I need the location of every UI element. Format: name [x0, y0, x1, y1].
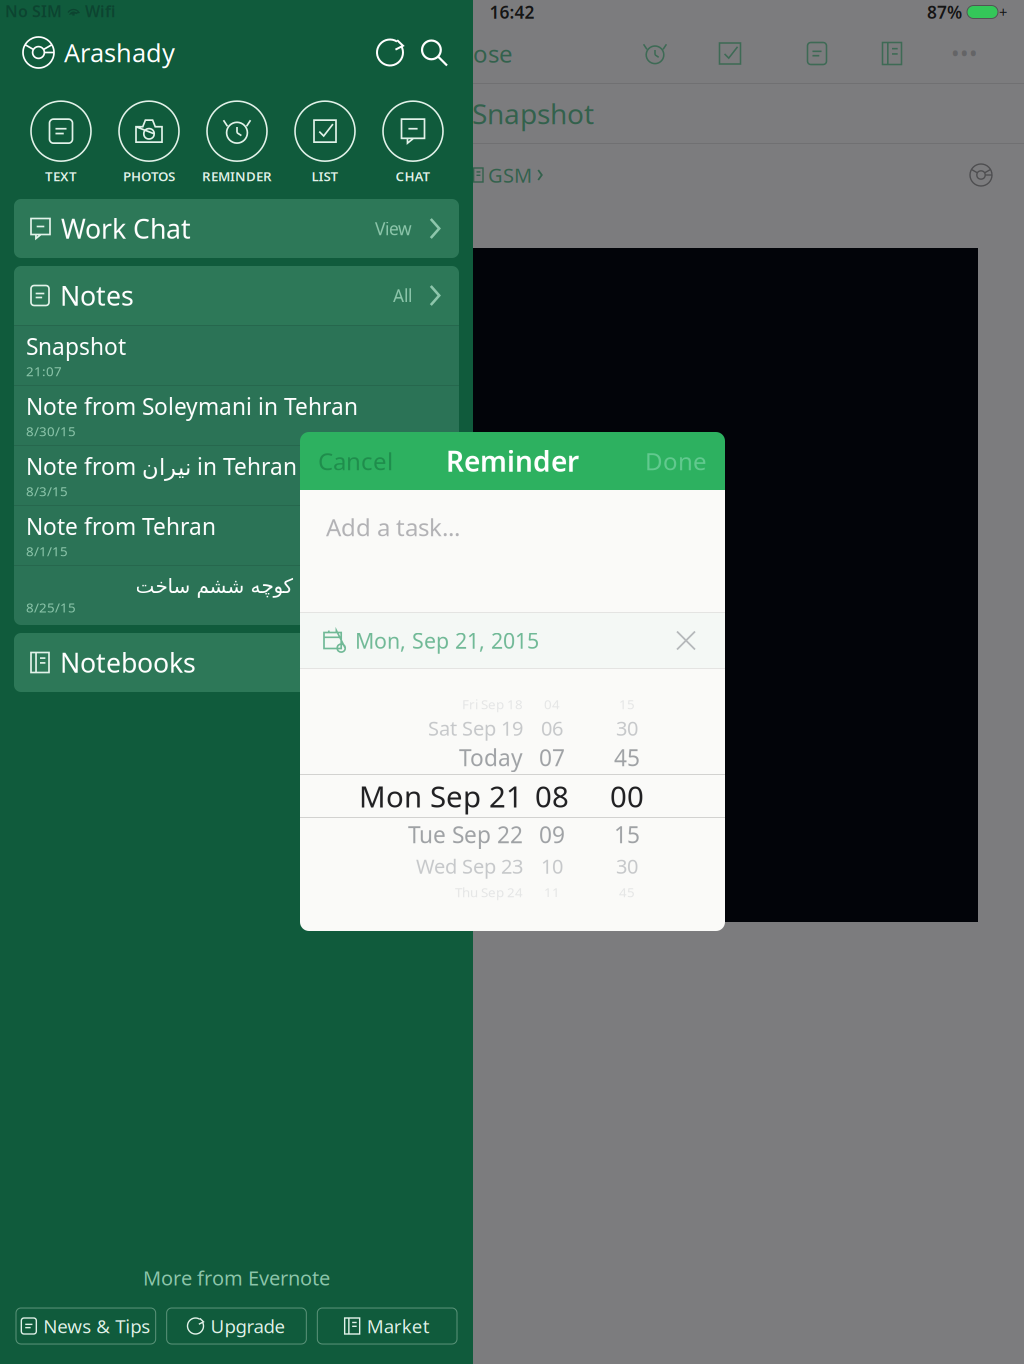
staticText: 21:07 — [26, 362, 62, 380]
button[interactable]: News & Tips — [16, 1308, 156, 1344]
staticText: CHAT — [395, 167, 430, 185]
staticText: 8/1/15 — [26, 542, 68, 560]
staticText: GSM — [488, 162, 532, 188]
staticText: 09 — [539, 819, 565, 849]
staticText: از میدان کاج نبش کوچه ششم ساخت — [135, 575, 447, 597]
staticText: Note from Soleymani in Tehran — [26, 391, 358, 421]
staticText: Wed Sep 23 — [416, 853, 523, 879]
button[interactable]: Cancel — [300, 432, 411, 490]
button[interactable]: GSM — [0, 144, 1024, 206]
staticText: No SIM — [5, 0, 62, 22]
staticText: 8/3/15 — [26, 482, 68, 500]
button[interactable]: Note from نیران in Tehran — [14, 446, 459, 505]
staticText: 8/30/15 — [26, 422, 76, 440]
button[interactable]: Upgrade — [167, 1308, 306, 1344]
button[interactable]: PHOTOS — [105, 97, 193, 185]
staticText: Work Chat — [61, 211, 191, 246]
staticText: 07 — [539, 742, 565, 772]
staticText: 06 — [541, 715, 563, 741]
staticText: Done — [645, 445, 707, 477]
staticText: Mon Sep 21 — [359, 776, 523, 815]
staticText: Note from نیران in Tehran — [26, 451, 297, 481]
staticText: REMINDER — [202, 167, 272, 185]
staticText: 15 — [614, 819, 640, 849]
staticText: Close — [452, 38, 513, 69]
button[interactable]: Reminder — [633, 31, 677, 75]
staticText: All — [393, 284, 412, 307]
staticText: PHOTOS — [123, 167, 175, 185]
button[interactable]: CHAT — [369, 97, 457, 185]
button[interactable]: Done — [627, 432, 725, 490]
button[interactable]: Search — [412, 30, 456, 74]
staticText: More from Evernote — [143, 1264, 330, 1291]
staticText: Today — [459, 742, 523, 772]
staticText: Thu Sep 24 — [455, 883, 523, 901]
staticText: 04 — [544, 695, 560, 713]
button[interactable]: Tag — [708, 31, 752, 75]
staticText: Fri Sep 18 — [462, 695, 523, 713]
staticText: News & Tips — [43, 1314, 150, 1338]
staticText: Tue Sep 22 — [408, 819, 523, 849]
button[interactable]: Note from Tehran — [14, 506, 459, 565]
button[interactable]: Notes — [14, 266, 459, 325]
staticText: View — [375, 217, 412, 240]
staticText: Snapshot — [472, 95, 594, 132]
button[interactable]: Work Chat — [14, 199, 459, 258]
button[interactable]: Note from Soleymani in Tehran — [14, 386, 459, 445]
button[interactable]: Market — [317, 1308, 457, 1344]
staticText: 11 — [544, 883, 560, 901]
staticText: 45 — [614, 742, 640, 772]
button[interactable]: Sync — [368, 30, 412, 74]
staticText: 30 — [616, 853, 638, 879]
staticText: 16:42 — [489, 0, 534, 23]
button[interactable]: Notebooks — [14, 633, 459, 692]
staticText: 30 — [616, 715, 638, 741]
staticText: 15 — [619, 695, 635, 713]
button[interactable]: Share — [870, 31, 914, 75]
staticText: Add a task... — [326, 511, 460, 543]
staticText: Mon, Sep 21, 2015 — [355, 626, 539, 655]
staticText: 08 — [535, 776, 569, 815]
button[interactable]: LIST — [281, 97, 369, 185]
staticText: LIST — [311, 167, 338, 185]
button[interactable]: Note info — [795, 31, 839, 75]
staticText: 8/25/15 — [26, 598, 76, 616]
staticText: 87% — [927, 0, 962, 23]
staticText: Upgrade — [210, 1314, 285, 1338]
staticText: Arashady — [64, 36, 175, 69]
staticText: Notebooks — [60, 645, 196, 680]
staticText: Reminder — [446, 442, 579, 480]
button[interactable]: از میدان کاج نبش کوچه ششم ساخت — [14, 566, 459, 625]
button[interactable]: More — [945, 27, 984, 79]
staticText: Note from Tehran — [26, 511, 216, 541]
staticText: Sat Sep 19 — [428, 715, 523, 741]
staticText: Wifi — [85, 0, 115, 22]
staticText: + — [999, 2, 1007, 22]
staticText: 45 — [619, 883, 635, 901]
staticText: ••• — [951, 38, 978, 68]
button[interactable]: Close — [444, 27, 521, 79]
button[interactable]: Mon, Sep 21, 2015 — [300, 613, 725, 668]
staticText: Market — [367, 1314, 430, 1338]
staticText: TEXT — [45, 167, 77, 185]
staticText: Cancel — [318, 445, 393, 477]
staticText: 00 — [610, 776, 644, 815]
staticText: Snapshot — [26, 331, 126, 361]
staticText: 10 — [541, 853, 563, 879]
button[interactable]: TEXT — [17, 97, 105, 185]
button[interactable]: REMINDER — [193, 97, 281, 185]
staticText: Notes — [60, 278, 134, 313]
button[interactable]: Snapshot — [14, 326, 459, 385]
